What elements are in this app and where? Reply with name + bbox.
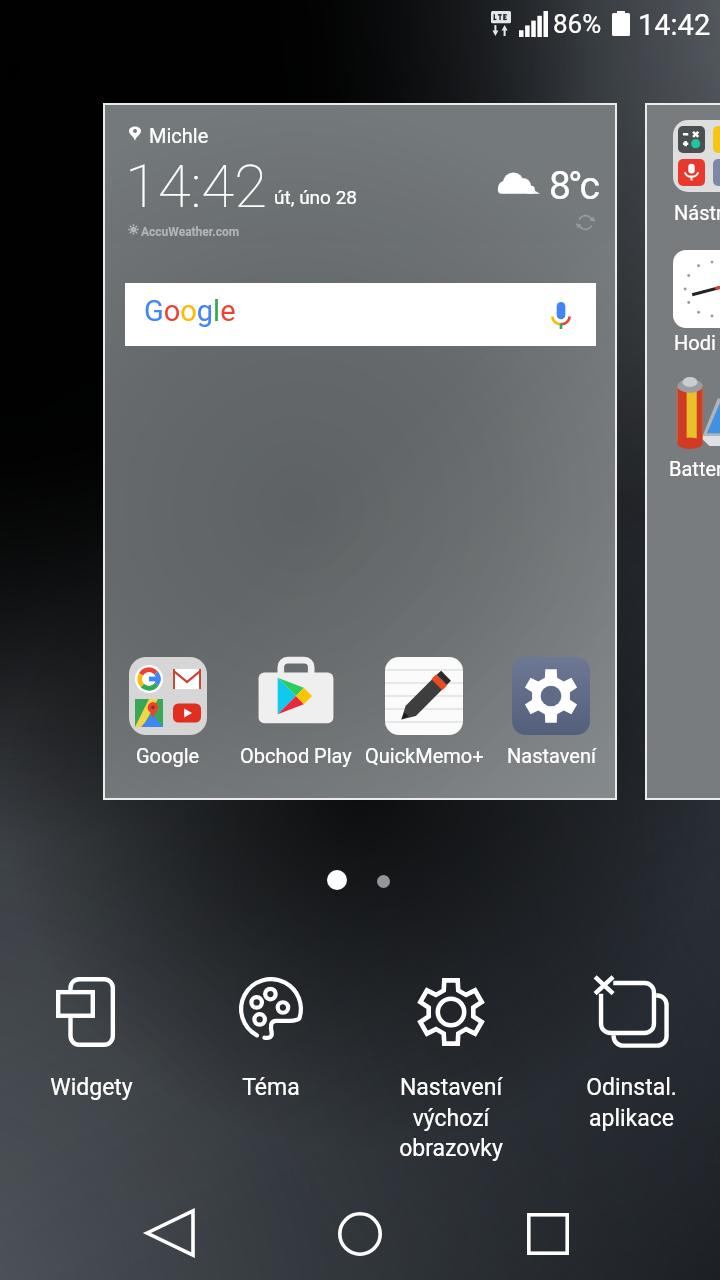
button[interactable]: Google: [125, 283, 596, 346]
staticText: Téma: [242, 1074, 300, 1101]
button[interactable]: Nastavení: [488, 657, 614, 767]
staticText: 14:42: [125, 151, 268, 221]
staticText: Google: [136, 744, 200, 767]
button[interactable]: QuickMemo+: [360, 657, 488, 767]
button[interactable]: Recent apps: [508, 1190, 588, 1278]
staticText: Nastavení: [507, 744, 596, 767]
button[interactable]: [673, 250, 720, 328]
staticText: QuickMemo+: [365, 744, 484, 767]
staticText: Nastavení výchozí obrazovky: [399, 1074, 503, 1161]
staticText: Hodi: [674, 331, 716, 354]
staticText: Widgety: [50, 1074, 133, 1101]
staticText: Michle: [149, 124, 209, 147]
button[interactable]: [678, 126, 720, 186]
button[interactable]: Obchod Play: [232, 657, 360, 767]
button[interactable]: Page 2: [377, 875, 390, 888]
staticText: 14:42: [638, 8, 711, 42]
button[interactable]: Back: [130, 1189, 210, 1277]
button[interactable]: [669, 377, 720, 449]
staticText: 86%: [553, 9, 602, 39]
button[interactable]: Odinstal. aplikace: [541, 977, 720, 1131]
button[interactable]: Home: [320, 1190, 400, 1278]
staticText: út, úno 28: [274, 186, 358, 208]
staticText: Obchod Play: [240, 744, 352, 767]
button[interactable]: Widgety: [1, 977, 181, 1101]
button[interactable]: Téma: [181, 977, 361, 1101]
staticText: Battery: [669, 457, 720, 480]
button[interactable]: Google: [104, 657, 232, 767]
button[interactable]: Nastavení výchozí obrazovky: [361, 977, 541, 1161]
staticText: Google: [144, 294, 236, 328]
staticText: AccuWeather.com: [141, 225, 240, 239]
staticText: 8°c: [549, 163, 597, 209]
staticText: Odinstal. aplikace: [586, 1074, 677, 1131]
staticText: Nástr: [674, 201, 720, 224]
button[interactable]: Page 1: [327, 870, 347, 890]
